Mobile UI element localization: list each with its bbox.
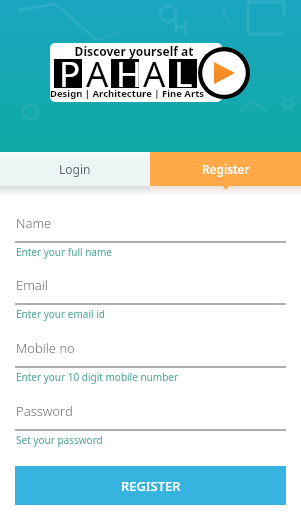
- staticText: Register: [202, 161, 250, 177]
- staticText: Enter your email id: [16, 307, 105, 321]
- staticText: Email: [16, 276, 48, 294]
- staticText: P: [59, 50, 81, 98]
- staticText: Set your password: [16, 433, 103, 447]
- staticText: Name: [16, 214, 52, 232]
- staticText: A: [143, 50, 166, 98]
- staticText: Enter your 10 digit mobile number: [16, 370, 179, 384]
- staticText: H: [116, 50, 142, 98]
- button[interactable]: Register: [150, 152, 301, 186]
- staticText: REGISTER: [121, 477, 181, 495]
- staticText: Login: [59, 161, 91, 177]
- button[interactable]: REGISTER: [15, 466, 286, 505]
- button[interactable]: Login: [0, 152, 150, 186]
- button[interactable]: Play video: [198, 47, 250, 99]
- staticText: Enter your full name: [16, 245, 112, 259]
- staticText: Design | Architecture | Fine Arts: [50, 87, 213, 100]
- staticText: A: [86, 50, 109, 98]
- staticText: Discover yourself at: [50, 43, 220, 59]
- staticText: L: [174, 50, 193, 98]
- staticText: Mobile no: [16, 339, 75, 357]
- staticText: Password: [16, 402, 73, 420]
